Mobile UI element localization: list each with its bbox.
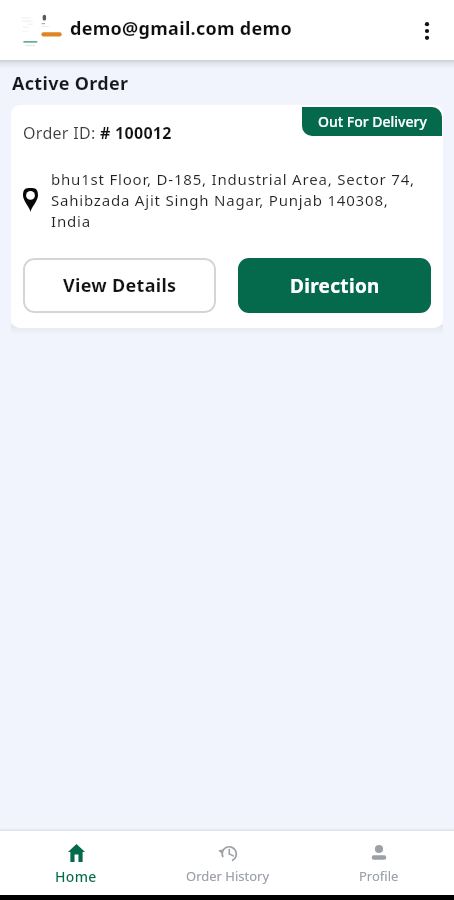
staticText: Order History [186, 867, 270, 885]
staticText: Active Order [12, 71, 129, 96]
staticText: Out For Delivery [318, 112, 427, 131]
staticText: demo@gmail.com demo [70, 16, 292, 41]
button[interactable]: Order History [152, 834, 303, 892]
button[interactable]: More options [410, 14, 444, 48]
button[interactable]: Home [0, 834, 152, 893]
staticText: bhu1st Floor, D-185, Industrial Area, Se… [51, 169, 426, 232]
staticText: View Details [63, 273, 177, 298]
staticText: Direction [290, 273, 380, 299]
staticText: Home [55, 867, 97, 886]
staticText: Profile [359, 867, 399, 885]
button[interactable]: Direction [238, 258, 431, 313]
button[interactable]: Profile [303, 834, 454, 892]
button[interactable]: View Details [23, 258, 216, 313]
staticText: Order ID: # 100012 [23, 122, 172, 144]
button[interactable]: Out For Delivery [302, 107, 442, 136]
